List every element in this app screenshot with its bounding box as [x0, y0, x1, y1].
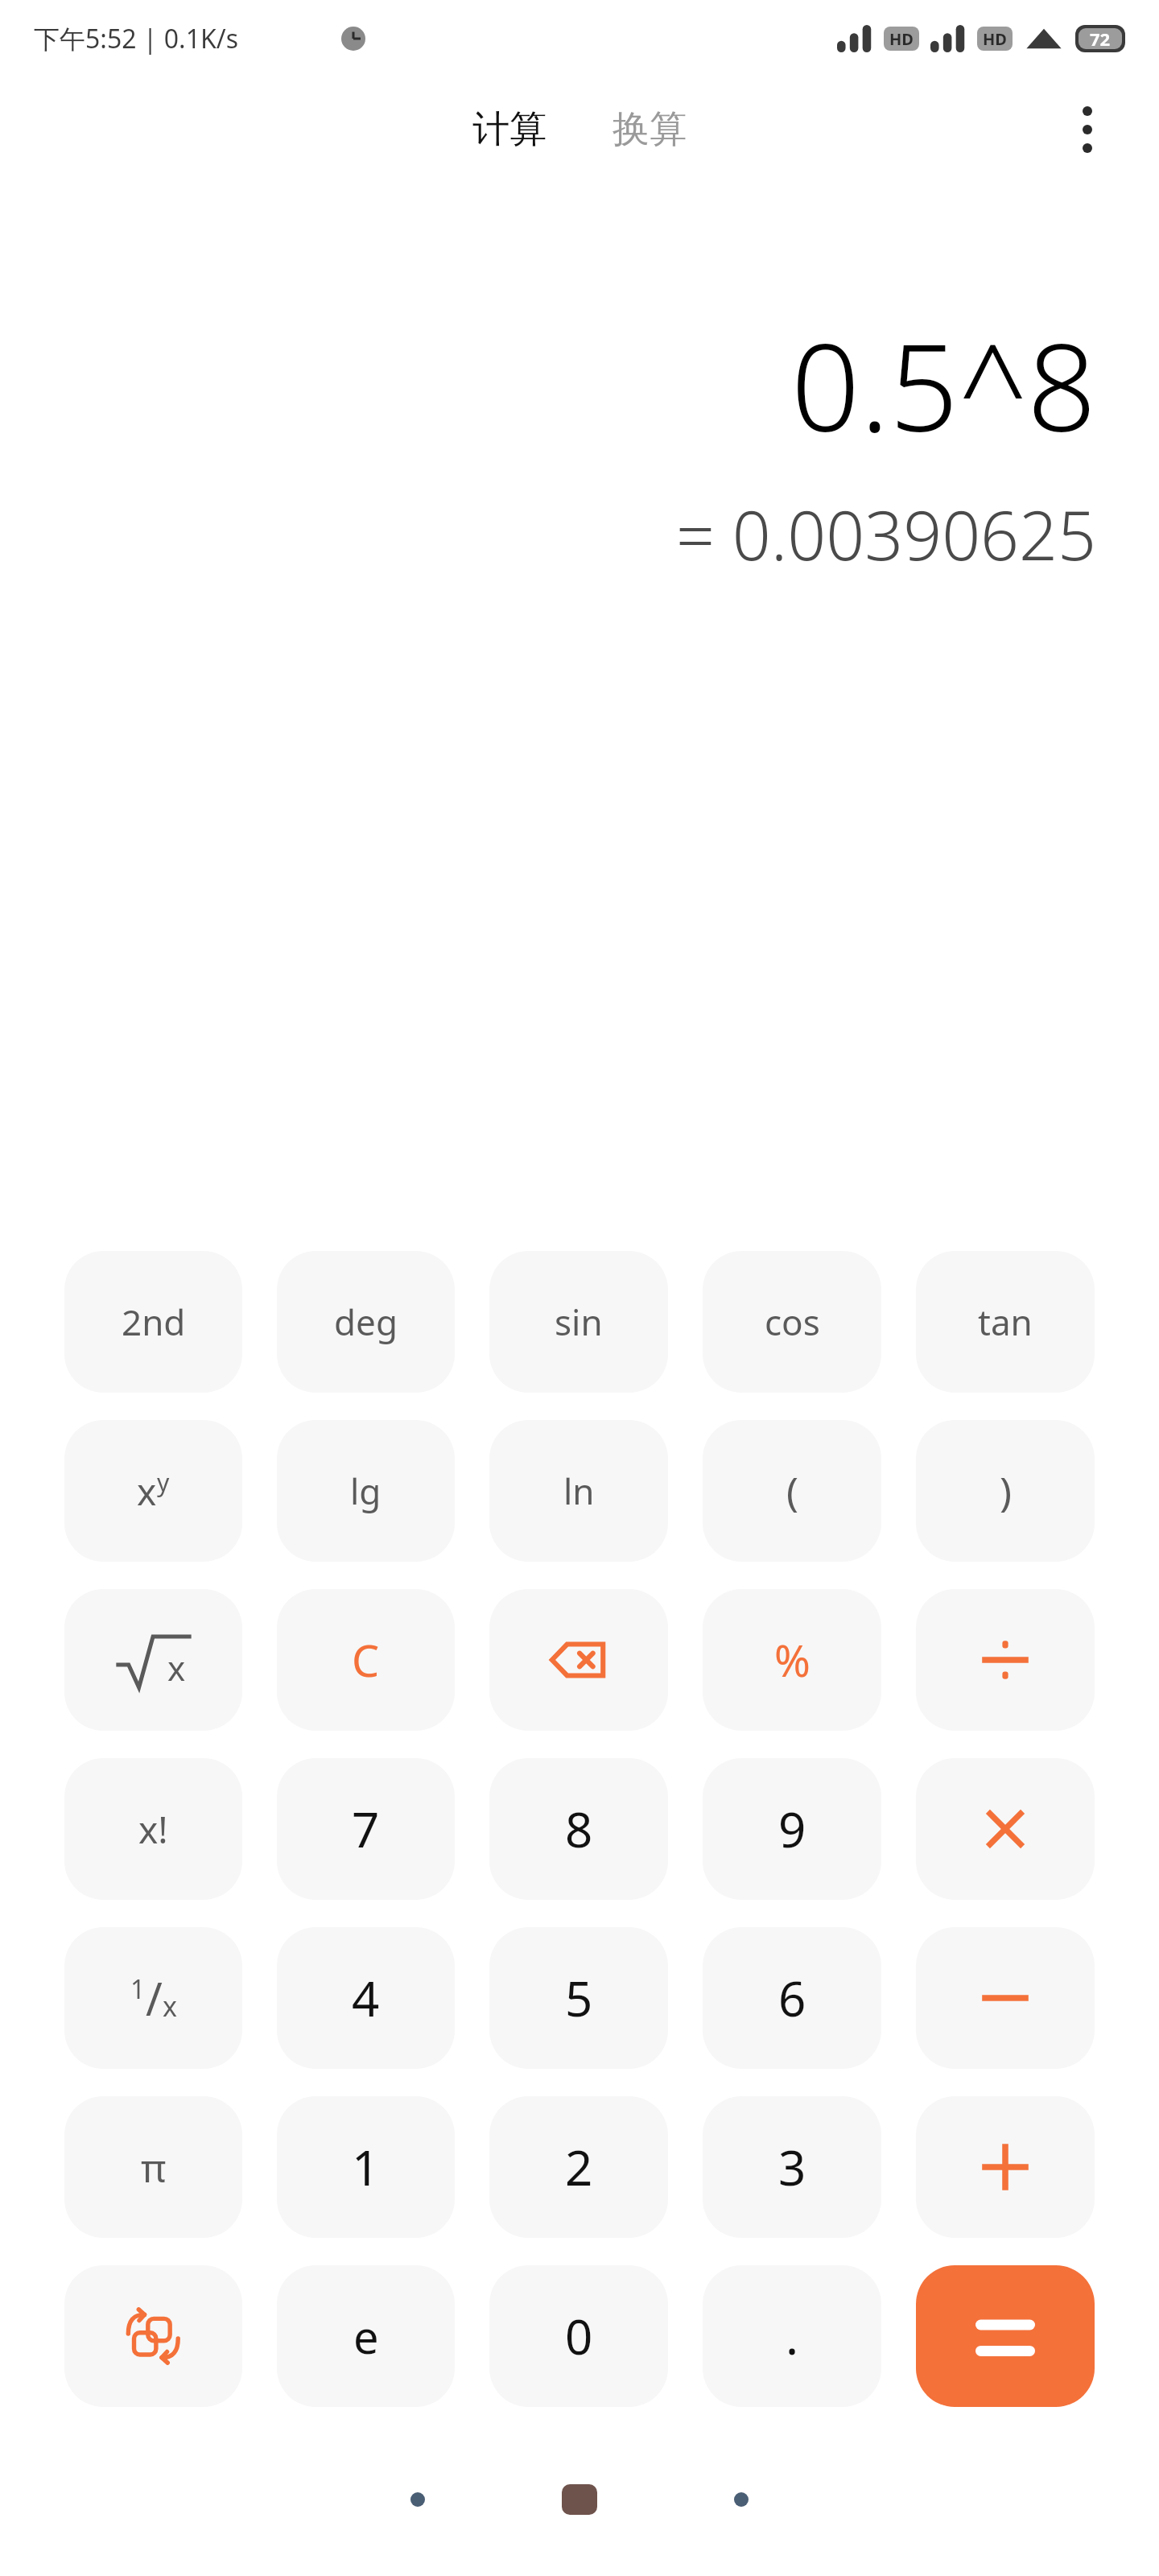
staticText: )	[1000, 1463, 1012, 1518]
staticText: π	[141, 2141, 167, 2194]
button[interactable]: Home	[562, 2484, 597, 2515]
staticText: lg	[350, 1467, 382, 1515]
button[interactable]: Recents	[734, 2492, 749, 2507]
staticText: sin	[555, 1298, 603, 1346]
button[interactable]: 计算	[464, 101, 555, 158]
staticText: /	[146, 1967, 163, 2029]
button[interactable]: .	[703, 2265, 881, 2407]
button[interactable]: e	[277, 2265, 455, 2407]
staticText: x	[167, 1645, 186, 1690]
staticText: 8	[565, 1796, 593, 1862]
button[interactable]: x	[64, 1420, 242, 1562]
button[interactable]: 4	[277, 1927, 455, 2069]
button[interactable]: 换算	[604, 101, 695, 158]
staticText: 72	[1090, 27, 1111, 51]
button[interactable]: lg	[277, 1420, 455, 1562]
staticText: C	[352, 1630, 380, 1690]
staticText: 7	[352, 1796, 380, 1862]
staticText: 0	[565, 2303, 593, 2369]
staticText: 9	[778, 1796, 806, 1862]
button[interactable]: 6	[703, 1927, 881, 2069]
button[interactable]: Multiply	[916, 1758, 1095, 1900]
button[interactable]: Backspace	[489, 1589, 668, 1731]
button[interactable]: 0	[489, 2265, 668, 2407]
button[interactable]: 1	[277, 2096, 455, 2238]
button[interactable]: x	[64, 1589, 242, 1731]
staticText: cos	[765, 1298, 820, 1346]
staticText: 下午5:52 | 0.1K/s	[34, 21, 238, 56]
staticText: ln	[563, 1467, 595, 1515]
staticText: x	[163, 1988, 177, 2025]
button[interactable]: )	[916, 1420, 1095, 1562]
button[interactable]: 2	[489, 2096, 668, 2238]
staticText: = 0.00390625	[676, 488, 1096, 580]
button[interactable]: 1	[64, 1927, 242, 2069]
staticText: 5	[565, 1965, 593, 2031]
button[interactable]: π	[64, 2096, 242, 2238]
staticText: deg	[334, 1298, 398, 1346]
button[interactable]: (	[703, 1420, 881, 1562]
button[interactable]: ln	[489, 1420, 668, 1562]
staticText: (	[786, 1463, 798, 1518]
staticText: %	[774, 1630, 810, 1690]
staticText: 1	[352, 2134, 380, 2200]
staticText: HD	[889, 28, 914, 50]
button[interactable]: deg	[277, 1251, 455, 1393]
button[interactable]: Back	[410, 2492, 425, 2507]
staticText: 0.5^8	[790, 303, 1096, 467]
button[interactable]: 5	[489, 1927, 668, 2069]
button[interactable]: C	[277, 1589, 455, 1731]
button[interactable]: 9	[703, 1758, 881, 1900]
button[interactable]: More options	[1053, 95, 1122, 164]
staticText: x	[137, 1466, 157, 1517]
staticText: .	[786, 2303, 799, 2369]
staticText: 换算	[612, 106, 687, 153]
staticText: 2	[565, 2134, 593, 2200]
button[interactable]: Plus	[916, 2096, 1095, 2238]
button[interactable]: Minus	[916, 1927, 1095, 2069]
button[interactable]: cos	[703, 1251, 881, 1393]
staticText: 2nd	[122, 1298, 186, 1346]
staticText: y	[157, 1466, 170, 1499]
staticText: 计算	[472, 106, 547, 153]
button[interactable]: History	[64, 2265, 242, 2407]
button[interactable]: tan	[916, 1251, 1095, 1393]
staticText: 1	[130, 1971, 146, 2007]
button[interactable]: 3	[703, 2096, 881, 2238]
staticText: HD	[983, 28, 1007, 50]
button[interactable]: Divide	[916, 1589, 1095, 1731]
button[interactable]: %	[703, 1589, 881, 1731]
staticText: e	[353, 2306, 379, 2367]
button[interactable]: x!	[64, 1758, 242, 1900]
button[interactable]: Equals	[916, 2265, 1095, 2407]
staticText: 3	[778, 2134, 806, 2200]
button[interactable]: 2nd	[64, 1251, 242, 1393]
button[interactable]: 8	[489, 1758, 668, 1900]
button[interactable]: 7	[277, 1758, 455, 1900]
button[interactable]: sin	[489, 1251, 668, 1393]
staticText: tan	[978, 1298, 1033, 1346]
staticText: 4	[352, 1965, 380, 2031]
staticText: 6	[778, 1965, 806, 2031]
staticText: x!	[138, 1804, 168, 1855]
